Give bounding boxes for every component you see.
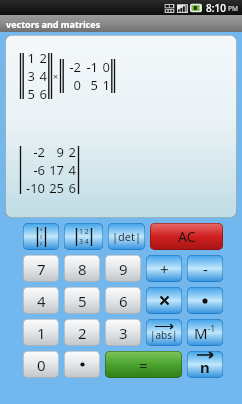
staticText: 2	[78, 323, 87, 343]
button[interactable]: 4	[23, 287, 59, 314]
staticText: -1	[86, 58, 98, 76]
button[interactable]: 7	[23, 255, 59, 282]
staticText: 5	[27, 85, 35, 103]
staticText: 1	[37, 323, 46, 343]
staticText: 6	[39, 85, 47, 103]
staticText: 3	[27, 67, 35, 85]
staticText: n	[200, 357, 210, 377]
button[interactable]: 8	[64, 255, 100, 282]
button[interactable]: 3	[105, 319, 141, 346]
staticText: 5	[78, 291, 87, 311]
button[interactable]: 0	[23, 351, 59, 378]
staticText: 0	[102, 58, 110, 76]
button[interactable]: Vector	[23, 223, 59, 250]
staticText: M	[194, 323, 208, 343]
staticText: 1	[102, 76, 110, 94]
staticText: 17	[49, 161, 64, 179]
staticText: y	[40, 233, 43, 240]
staticText: x	[40, 226, 43, 233]
button[interactable]: -	[187, 255, 223, 282]
staticText: ×	[53, 70, 59, 82]
staticText: 6	[68, 179, 76, 197]
staticText: 4	[37, 291, 46, 311]
staticText: 8:10	[206, 1, 226, 15]
staticText: 6	[119, 291, 128, 311]
staticText: 25	[49, 179, 64, 197]
button[interactable]: 1	[23, 319, 59, 346]
staticText: 1 2	[79, 227, 89, 237]
button[interactable]: 9	[105, 255, 141, 282]
staticText: 4	[68, 161, 76, 179]
button[interactable]: Absolute value of vector	[146, 319, 182, 346]
staticText: AC	[178, 227, 196, 246]
staticText: 0	[37, 355, 46, 375]
staticText: z	[40, 240, 43, 247]
button[interactable]: 5	[64, 287, 100, 314]
staticText: |abs|	[150, 328, 178, 342]
staticText: -2	[69, 58, 81, 76]
button[interactable]: 2	[64, 319, 100, 346]
staticText: -	[203, 259, 208, 279]
staticText: 7	[37, 259, 46, 279]
staticText: |det|	[112, 229, 142, 244]
button[interactable]: |det|	[108, 223, 145, 250]
staticText: 1	[27, 49, 35, 67]
staticText: 0	[73, 76, 81, 94]
staticText: 2	[39, 49, 47, 67]
staticText: 2	[68, 143, 76, 161]
button[interactable]: Matrix	[64, 223, 103, 250]
button[interactable]: Multiply	[146, 287, 182, 314]
staticText: +	[160, 259, 169, 279]
button[interactable]: Matrix inverse	[187, 319, 223, 346]
staticText: 9	[119, 259, 128, 279]
button[interactable]: +	[146, 255, 182, 282]
staticText: =	[139, 355, 148, 375]
staticText: 4	[39, 67, 47, 85]
button[interactable]: Decimal point	[64, 351, 100, 378]
button[interactable]: Normal vector	[187, 351, 223, 378]
button[interactable]: AC	[150, 223, 223, 250]
staticText: 3	[119, 323, 128, 343]
staticText: -6	[33, 161, 45, 179]
staticText: 9	[56, 143, 64, 161]
staticText: 8	[78, 259, 87, 279]
button[interactable]: =	[105, 351, 182, 378]
button[interactable]: 6	[105, 287, 141, 314]
staticText: vectors and matrices	[6, 18, 101, 30]
staticText: -10	[25, 179, 45, 197]
button[interactable]: Dot product	[187, 287, 223, 314]
staticText: -1	[208, 323, 216, 334]
staticText: 5	[90, 76, 98, 94]
staticText: -2	[33, 143, 45, 161]
staticText: 3 4	[79, 237, 89, 247]
staticText: PM	[228, 4, 238, 13]
